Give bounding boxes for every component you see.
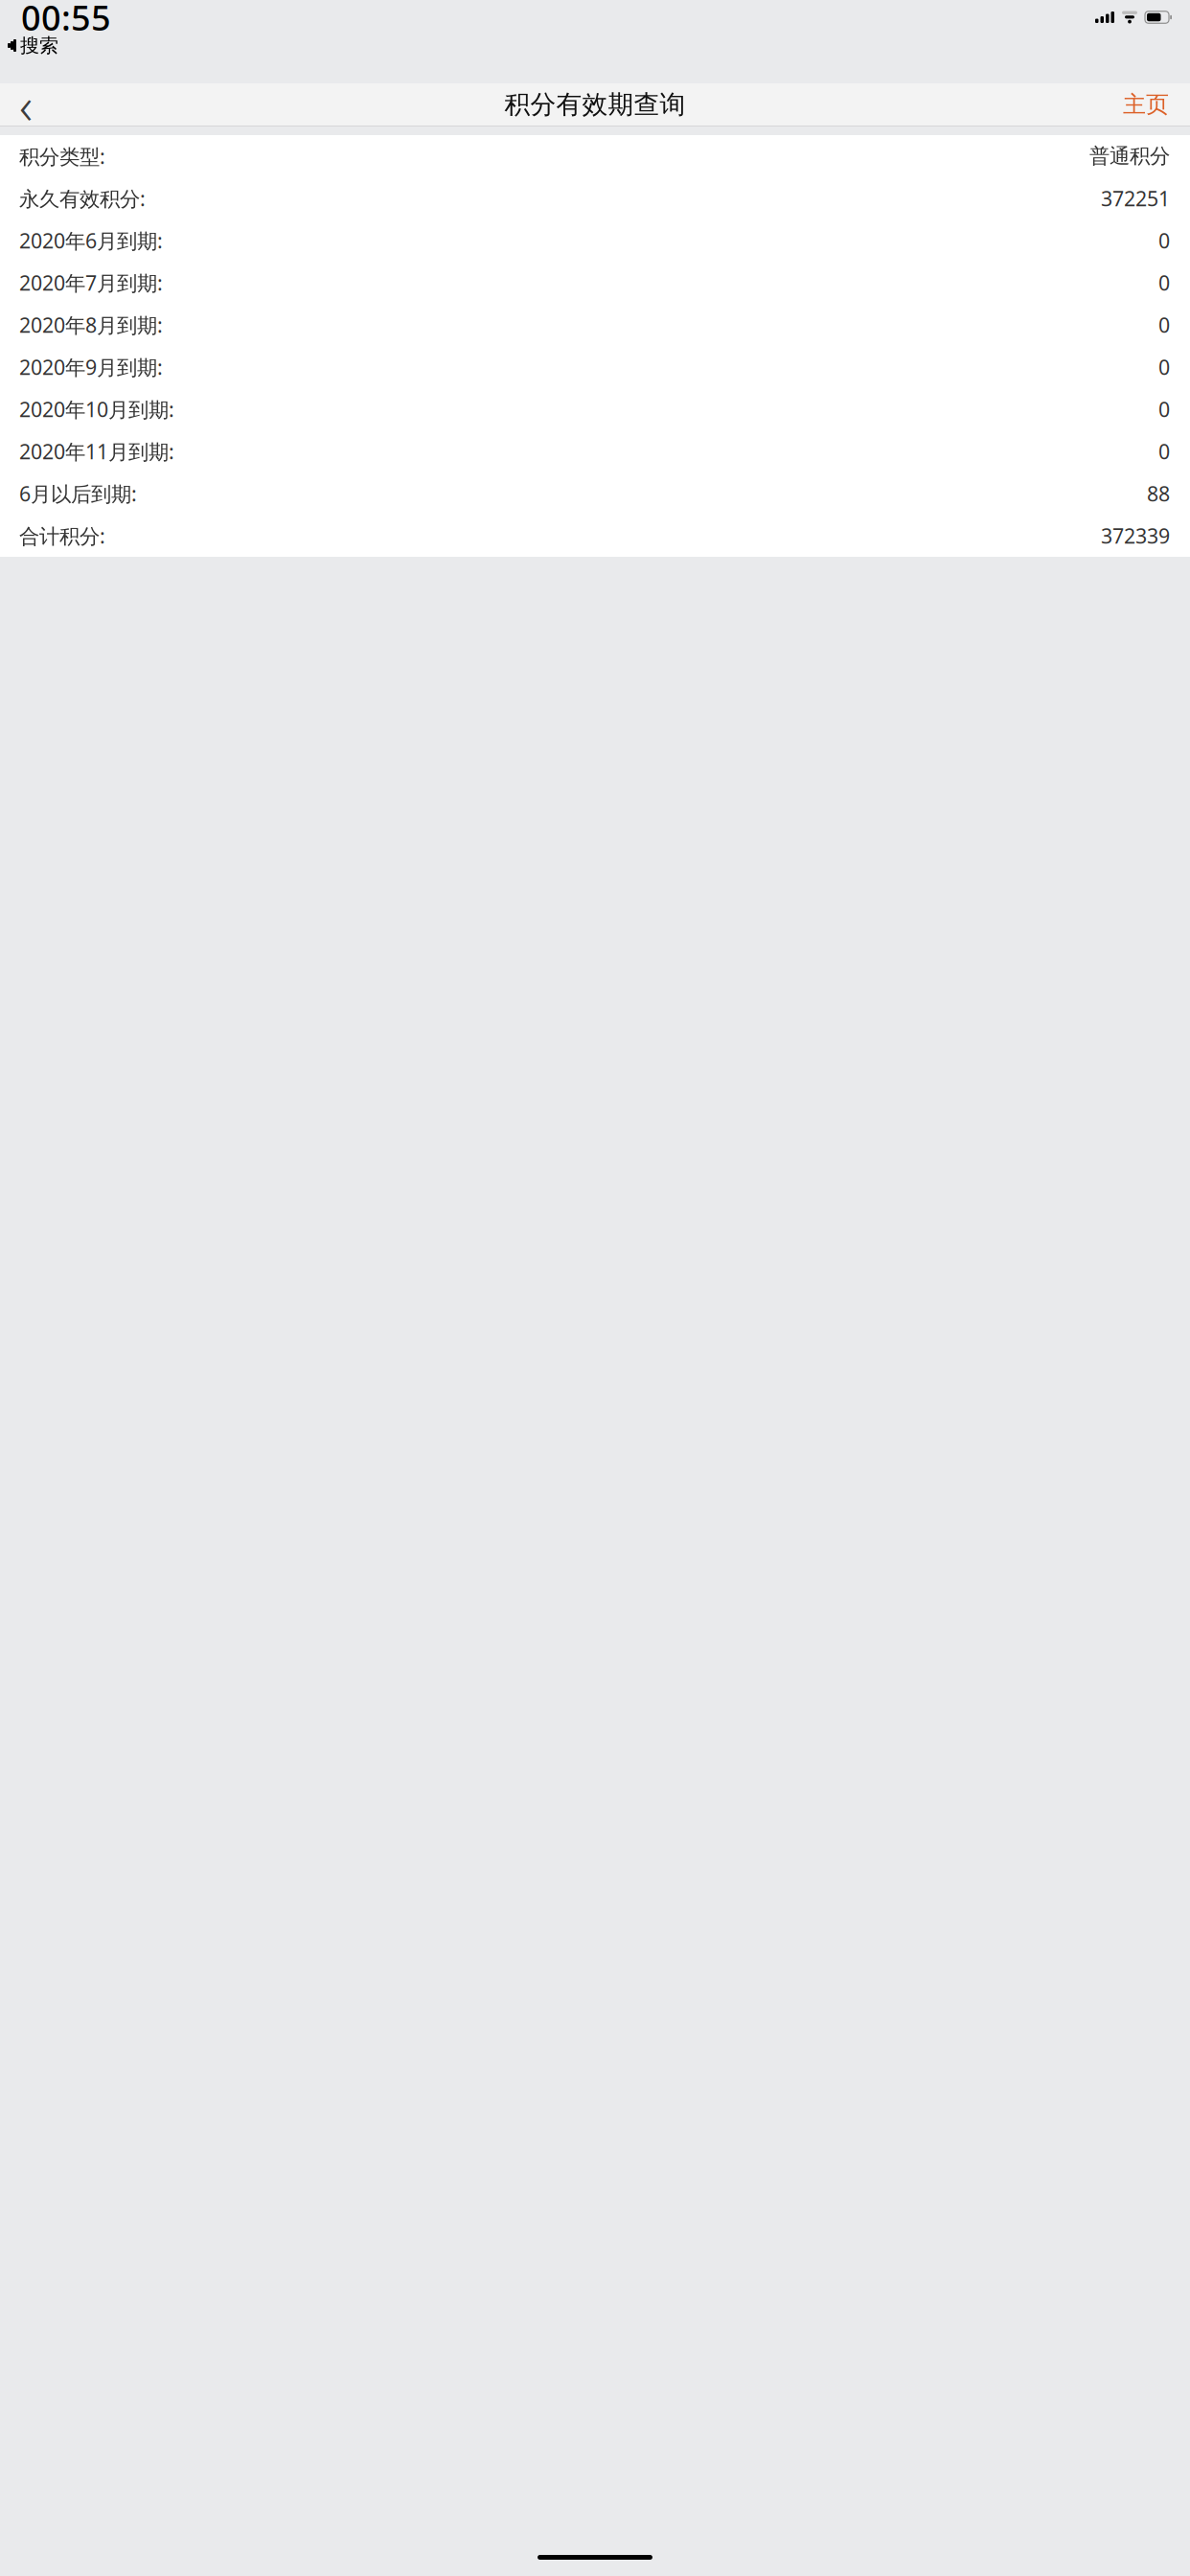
staticText: 372339 <box>1101 522 1170 549</box>
button[interactable]: 合计积分: <box>0 515 1190 557</box>
staticText: 2020年6月到期: <box>19 227 163 254</box>
button[interactable]: 返回 <box>0 83 52 126</box>
staticText: ‹ <box>19 71 33 138</box>
staticText: 0 <box>1158 227 1170 254</box>
button[interactable]: 2020年11月到期: <box>0 430 1190 472</box>
staticText: 2020年10月到期: <box>19 396 174 423</box>
button[interactable]: 2020年6月到期: <box>0 219 1190 262</box>
button[interactable]: 6月以后到期: <box>0 472 1190 515</box>
staticText: 0 <box>1158 396 1170 423</box>
button[interactable]: 2020年7月到期: <box>0 262 1190 304</box>
staticText: 2020年9月到期: <box>19 353 163 381</box>
staticText: 永久有效积分: <box>19 185 146 212</box>
staticText: 积分有效期查询 <box>504 89 686 120</box>
staticText: 0 <box>1158 269 1170 296</box>
staticText: 88 <box>1147 480 1170 507</box>
button[interactable]: 2020年8月到期: <box>0 304 1190 346</box>
button[interactable]: 2020年10月到期: <box>0 388 1190 430</box>
button[interactable]: 积分类型: <box>0 135 1190 177</box>
button[interactable]: 主页 <box>1108 83 1184 126</box>
staticText: 2020年8月到期: <box>19 311 163 338</box>
staticText: 合计积分: <box>19 522 105 549</box>
staticText: 372251 <box>1101 185 1170 212</box>
staticText: 搜索 <box>20 34 58 57</box>
staticText: 主页 <box>1123 90 1169 119</box>
staticText: 普通积分 <box>1089 144 1170 169</box>
staticText: 0 <box>1158 311 1170 338</box>
button[interactable]: 永久有效积分: <box>0 177 1190 219</box>
staticText: 00:55 <box>21 0 111 40</box>
staticText: 2020年7月到期: <box>19 269 163 296</box>
staticText: 0 <box>1158 353 1170 381</box>
staticText: 0 <box>1158 438 1170 465</box>
staticText: 2020年11月到期: <box>19 438 174 465</box>
staticText: 6月以后到期: <box>19 480 137 507</box>
button[interactable]: 2020年9月到期: <box>0 346 1190 388</box>
staticText: 积分类型: <box>19 143 105 170</box>
